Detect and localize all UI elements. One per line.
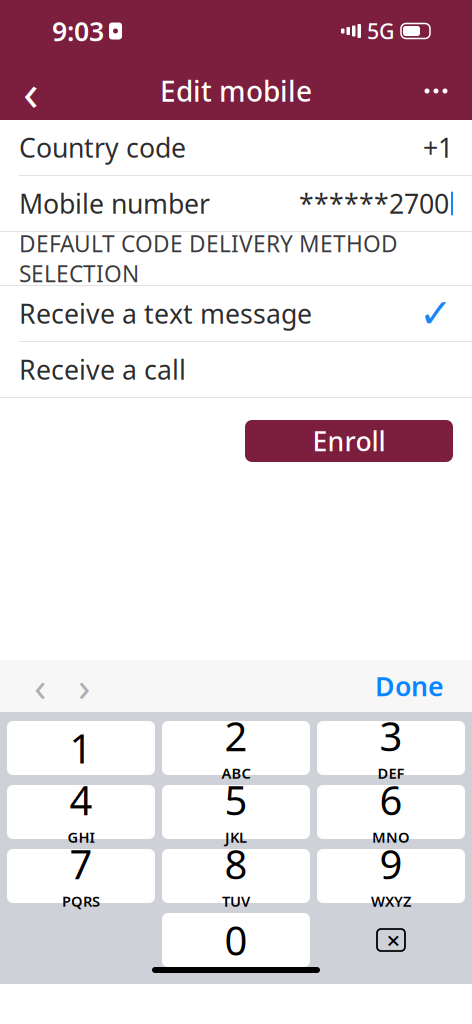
button[interactable]: Receive a text message xyxy=(0,286,472,341)
staticText: 5 xyxy=(224,773,247,826)
button[interactable]: 3 xyxy=(317,721,465,775)
button[interactable]: 2 xyxy=(162,721,310,775)
button[interactable]: More options xyxy=(406,63,466,119)
button[interactable]: Country code xyxy=(0,120,472,175)
staticText: 9:03 xyxy=(52,13,104,49)
staticText: +1 xyxy=(423,130,453,165)
button[interactable]: 7 xyxy=(7,849,155,903)
staticText: ******2700 xyxy=(299,186,449,221)
button[interactable]: Enroll xyxy=(245,420,453,462)
button[interactable]: 1 xyxy=(7,721,155,775)
staticText: ‹ xyxy=(34,659,46,712)
button[interactable]: 6 xyxy=(317,785,465,839)
staticText: ✓ xyxy=(419,291,453,336)
staticText: Mobile number xyxy=(19,186,210,221)
staticText: MNO xyxy=(372,827,410,847)
staticText: TUV xyxy=(222,891,250,911)
staticText: Done xyxy=(375,668,444,704)
staticText: 2 xyxy=(224,709,247,762)
staticText: ABC xyxy=(221,763,250,783)
button[interactable]: Next field xyxy=(62,664,106,708)
staticText: DEF xyxy=(377,763,404,783)
button[interactable]: 9 xyxy=(317,849,465,903)
button[interactable]: 0 xyxy=(162,913,310,967)
button[interactable]: 5 xyxy=(162,785,310,839)
staticText: 3 xyxy=(379,709,402,762)
staticText: 8 xyxy=(224,837,247,890)
button[interactable]: Mobile number xyxy=(0,176,472,231)
staticText: WXYZ xyxy=(371,891,411,911)
staticText: 6 xyxy=(379,773,402,826)
staticText: 7 xyxy=(69,837,92,890)
button[interactable]: Back xyxy=(6,63,56,119)
staticText: Receive a call xyxy=(19,352,186,387)
staticText: 0 xyxy=(224,913,247,966)
staticText: ‹ xyxy=(23,57,39,125)
staticText: 1 xyxy=(69,721,92,774)
staticText: Receive a text message xyxy=(19,296,312,331)
staticText: Country code xyxy=(19,130,186,165)
staticText: GHI xyxy=(67,827,94,847)
button[interactable]: Done xyxy=(365,664,454,708)
staticText: › xyxy=(78,659,90,712)
staticText: 5G xyxy=(367,17,395,45)
button[interactable]: Receive a call xyxy=(0,342,472,397)
staticText: DEFAULT CODE DELIVERY METHOD SELECTION xyxy=(19,228,398,289)
button[interactable]: Delete xyxy=(317,913,465,967)
button[interactable]: 8 xyxy=(162,849,310,903)
staticText: 9 xyxy=(379,837,402,890)
staticText: 4 xyxy=(69,773,92,826)
button[interactable]: 4 xyxy=(7,785,155,839)
staticText: Edit mobile xyxy=(160,72,312,110)
staticText: Enroll xyxy=(312,423,385,459)
button[interactable]: Previous field xyxy=(18,664,62,708)
staticText: × xyxy=(386,924,400,956)
staticText: JKL xyxy=(225,827,247,847)
staticText: PQRS xyxy=(62,891,100,911)
